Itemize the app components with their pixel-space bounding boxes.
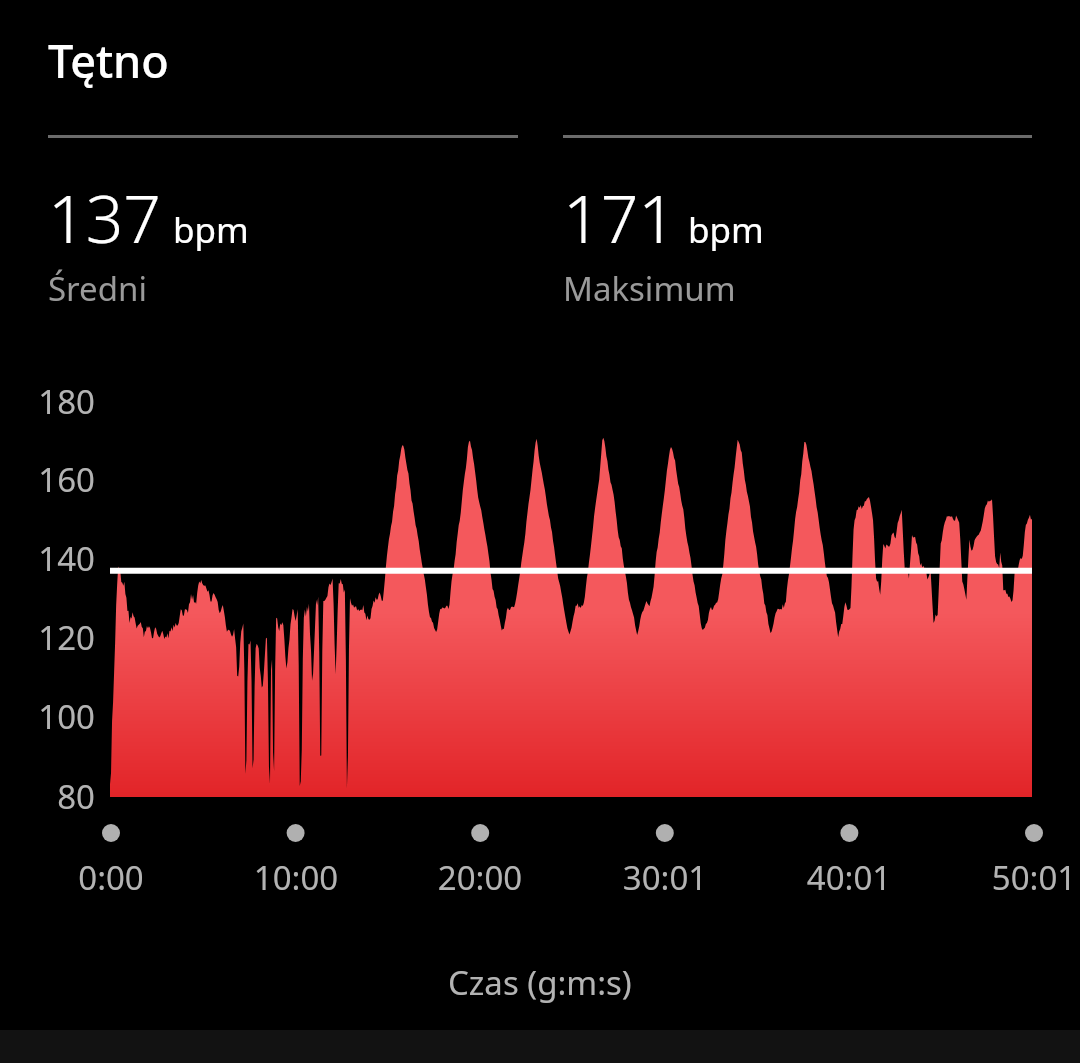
staticText: 20:00 (390, 855, 570, 900)
staticText: 80 (0, 774, 95, 819)
staticText: 137 (48, 172, 162, 262)
staticText: 120 (0, 615, 95, 660)
staticText: 180 (0, 379, 95, 424)
staticText: bpm (688, 206, 764, 254)
staticText: 30:01 (575, 855, 755, 900)
staticText: 0:00 (21, 855, 201, 900)
button[interactable]: Wykres tętna (0, 370, 1080, 810)
staticText: Czas (g:m:s) (448, 960, 632, 1005)
staticText: bpm (173, 206, 249, 254)
staticText: 10:00 (206, 855, 386, 900)
staticText: 100 (0, 694, 95, 739)
button[interactable]: 137 (48, 172, 508, 311)
staticText: 140 (0, 536, 95, 581)
staticText: 171 (563, 172, 677, 262)
staticText: 160 (0, 457, 95, 502)
staticText: Średni (48, 266, 147, 311)
button[interactable]: 171 (563, 172, 1023, 311)
staticText: 40:01 (759, 855, 939, 900)
staticText: Maksimum (563, 266, 736, 311)
staticText: 50:01 (944, 855, 1080, 900)
staticText: Tętno (48, 30, 169, 91)
